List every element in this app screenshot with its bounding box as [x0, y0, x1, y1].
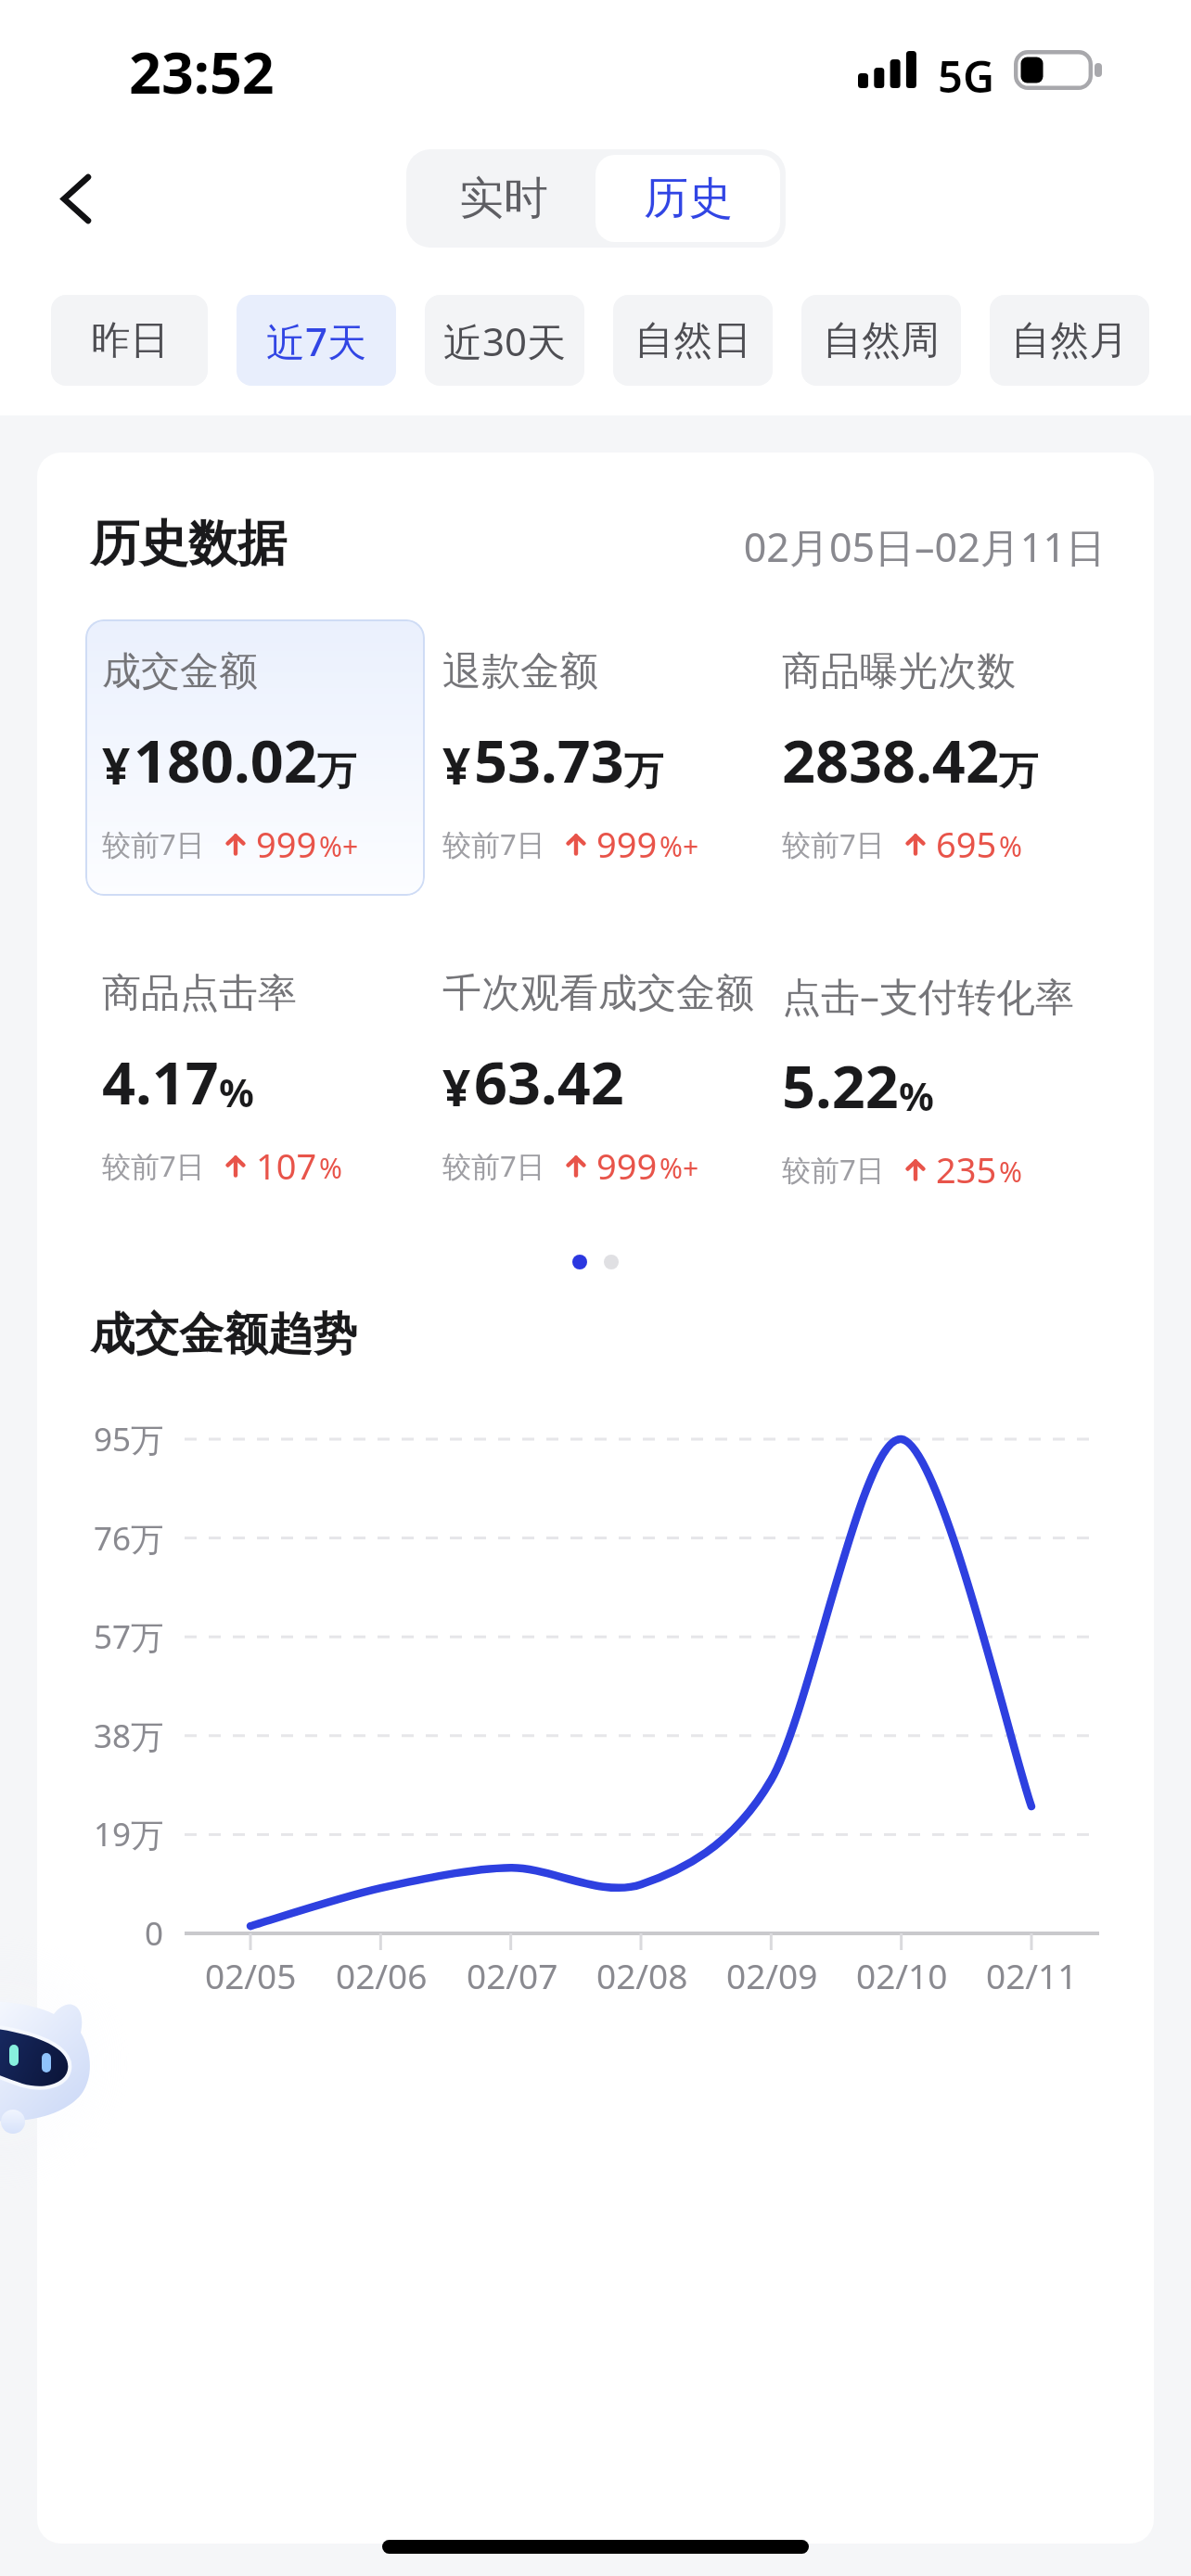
button[interactable]: 自然月 — [990, 295, 1149, 386]
staticText: 实时 — [459, 171, 548, 226]
staticText: 57万 — [52, 1614, 163, 1659]
staticText: 53.73 — [474, 721, 624, 800]
staticText: 19万 — [52, 1812, 163, 1856]
staticText: 02/08 — [596, 1952, 688, 1998]
staticText: 999 — [596, 820, 658, 868]
staticText: 较前7日 — [442, 1146, 545, 1185]
staticText: 商品点击率 — [102, 969, 297, 1018]
staticText: 0 — [52, 1911, 163, 1956]
staticText: 较前7日 — [102, 1146, 205, 1185]
staticText: 近30天 — [443, 314, 567, 367]
button[interactable]: 点击–支付转化率 — [765, 941, 1105, 1218]
staticText: 76万 — [52, 1516, 163, 1561]
button[interactable]: 千次观看成交金额 — [426, 941, 765, 1218]
staticText: 较前7日 — [442, 824, 545, 863]
button[interactable]: 自然日 — [613, 295, 773, 386]
staticText: % — [219, 1065, 254, 1118]
button[interactable]: 实时 — [412, 155, 595, 242]
staticText: 95万 — [52, 1417, 163, 1461]
button[interactable]: Back — [32, 154, 121, 243]
staticText: 较前7日 — [782, 824, 885, 863]
staticText: 02/06 — [336, 1952, 428, 1998]
staticText: 02/10 — [856, 1952, 948, 1998]
staticText: 02月05日–02月11日 — [660, 519, 1106, 574]
staticText: 成交金额趋势 — [90, 1307, 357, 1362]
staticText: ¥ — [442, 1053, 471, 1120]
staticText: 自然月 — [1011, 316, 1128, 365]
staticText: % — [999, 827, 1022, 865]
button[interactable]: 商品点击率 — [85, 941, 425, 1218]
button[interactable]: 商品曝光次数 — [765, 619, 1105, 896]
staticText: 180.02 — [134, 721, 317, 800]
staticText: % — [999, 1153, 1022, 1191]
staticText: 万 — [624, 747, 663, 797]
staticText: 5G — [938, 46, 995, 106]
staticText: 5.22 — [782, 1046, 899, 1126]
staticText: 107 — [256, 1141, 317, 1190]
staticText: 历史 — [644, 171, 733, 226]
staticText: 自然周 — [823, 316, 940, 365]
staticText: % — [899, 1069, 934, 1122]
button[interactable]: AI assistant — [0, 1994, 102, 2142]
staticText: 昨日 — [91, 316, 169, 365]
staticText: 较前7日 — [102, 824, 205, 863]
staticText: % — [319, 1149, 342, 1187]
staticText: %+ — [660, 1149, 699, 1187]
button[interactable]: 历史 — [595, 155, 780, 242]
staticText: 商品曝光次数 — [782, 647, 1016, 696]
button[interactable]: Page 1 — [572, 1255, 587, 1269]
staticText: 2838.42 — [782, 721, 999, 800]
staticText: 成交金额 — [102, 647, 258, 696]
staticText: 退款金额 — [442, 647, 598, 696]
staticText: 235 — [936, 1145, 997, 1193]
button[interactable]: 昨日 — [51, 295, 208, 386]
staticText: %+ — [660, 827, 699, 865]
staticText: 历史数据 — [90, 513, 287, 575]
staticText: %+ — [319, 827, 359, 865]
staticText: 38万 — [52, 1714, 163, 1758]
button[interactable]: 退款金额 — [426, 619, 765, 896]
staticText: 万 — [999, 747, 1038, 797]
staticText: 千次观看成交金额 — [442, 969, 754, 1018]
staticText: 02/09 — [726, 1952, 818, 1998]
staticText: ¥ — [102, 732, 131, 798]
button[interactable]: 近30天 — [425, 295, 584, 386]
staticText: 自然日 — [634, 316, 751, 365]
staticText: 近7天 — [266, 314, 367, 367]
staticText: 02/05 — [205, 1952, 297, 1998]
staticText: 02/07 — [467, 1952, 558, 1998]
staticText: 23:52 — [129, 33, 275, 110]
staticText: 点击–支付转化率 — [782, 969, 1075, 1022]
staticText: 999 — [256, 820, 317, 868]
staticText: ¥ — [442, 732, 471, 798]
staticText: 63.42 — [474, 1042, 624, 1122]
button[interactable]: 近7天 — [237, 295, 396, 386]
button[interactable]: 自然周 — [801, 295, 961, 386]
staticText: 较前7日 — [782, 1150, 885, 1189]
staticText: 4.17 — [102, 1042, 219, 1122]
staticText: 999 — [596, 1141, 658, 1190]
staticText: 02/11 — [986, 1952, 1078, 1998]
button[interactable]: 成交金额 — [85, 619, 425, 896]
button[interactable]: Page 2 — [604, 1255, 619, 1269]
staticText: 695 — [936, 820, 997, 868]
staticText: 万 — [317, 747, 356, 797]
